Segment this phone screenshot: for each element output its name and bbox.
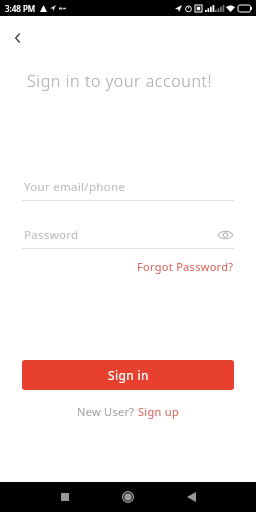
staticText: Sign in — [108, 367, 149, 383]
button[interactable]: Back — [178, 484, 204, 510]
button[interactable]: Password — [22, 226, 234, 244]
button[interactable]: Your email/phone — [22, 178, 234, 196]
staticText: 3:48 PM — [5, 3, 36, 14]
button[interactable]: Recent apps — [52, 484, 78, 510]
button[interactable]: Sign up — [138, 404, 179, 419]
button[interactable]: Home — [115, 484, 141, 510]
staticText: Forgot Password? — [137, 259, 234, 274]
button[interactable]: Back — [2, 22, 34, 54]
button[interactable]: Sign in — [22, 360, 234, 390]
staticText: Your email/phone — [24, 179, 126, 195]
staticText: Password — [24, 227, 79, 243]
staticText: Sign in to your account! — [27, 70, 213, 92]
staticText: New User? — [77, 404, 138, 419]
button[interactable]: Forgot Password? — [137, 259, 234, 274]
staticText: Sign up — [138, 404, 179, 419]
button[interactable]: Show password — [216, 226, 234, 244]
